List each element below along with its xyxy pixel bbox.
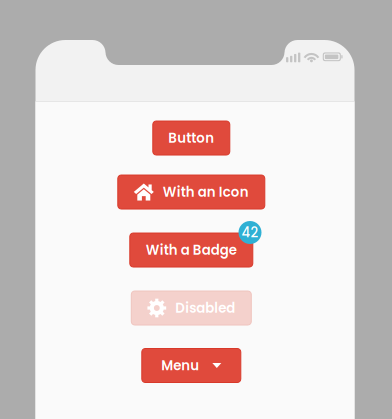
staticText: With a Badge xyxy=(146,241,237,259)
button[interactable]: With a Badge xyxy=(130,233,253,267)
staticText: Button xyxy=(168,129,214,147)
staticText: Disabled xyxy=(175,299,235,317)
button[interactable]: Disabled xyxy=(131,291,251,325)
staticText: 42 xyxy=(241,223,258,242)
button[interactable]: Button xyxy=(153,121,230,155)
staticText: With an Icon xyxy=(163,183,249,201)
staticText: Menu xyxy=(161,356,199,375)
button[interactable]: Menu xyxy=(142,348,241,382)
button[interactable]: With an Icon xyxy=(118,175,265,209)
